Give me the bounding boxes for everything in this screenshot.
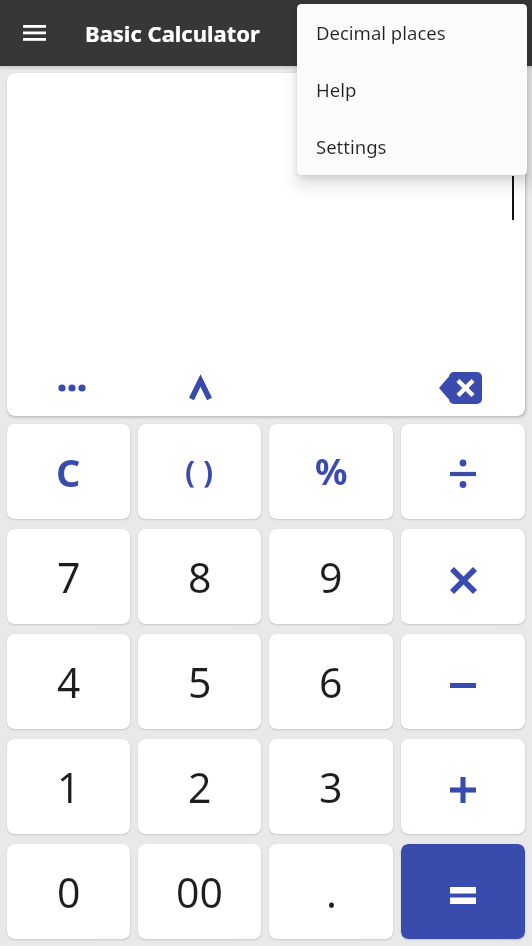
staticText: 8 xyxy=(188,549,212,605)
staticText: C xyxy=(56,446,81,498)
button[interactable]: 2 xyxy=(138,739,261,834)
staticText: 7 xyxy=(57,549,81,605)
button[interactable]: . xyxy=(269,844,393,939)
staticText: 9 xyxy=(319,549,343,605)
button[interactable]: Settings xyxy=(297,118,527,175)
staticText: 1 xyxy=(57,759,81,815)
button[interactable]: 6 xyxy=(269,634,393,729)
button[interactable]: 3 xyxy=(269,739,393,834)
staticText: 5 xyxy=(188,654,212,710)
staticText: ( ) xyxy=(185,451,214,492)
staticText: 4 xyxy=(57,654,81,710)
button[interactable] xyxy=(401,529,525,624)
button[interactable] xyxy=(7,367,136,403)
staticText: Decimal places xyxy=(316,20,446,45)
button[interactable] xyxy=(401,634,525,729)
staticText: Basic Calculator xyxy=(85,18,260,48)
button[interactable]: C xyxy=(7,424,130,519)
button[interactable]: 4 xyxy=(7,634,130,729)
button[interactable] xyxy=(401,844,525,939)
button[interactable]: 5 xyxy=(138,634,261,729)
button[interactable]: ( ) xyxy=(138,424,261,519)
button[interactable] xyxy=(136,367,265,403)
staticText: 2 xyxy=(188,759,212,815)
button[interactable]: 1 xyxy=(7,739,130,834)
button[interactable]: 9 xyxy=(269,529,393,624)
button[interactable]: Help xyxy=(297,61,527,118)
staticText: % xyxy=(315,447,348,496)
button[interactable]: 0 xyxy=(7,844,130,939)
staticText: Settings xyxy=(316,134,387,159)
staticText: 0 xyxy=(57,864,81,920)
button[interactable]: Decimal places xyxy=(297,4,527,61)
button[interactable] xyxy=(401,739,525,834)
staticText: 6 xyxy=(319,654,343,710)
button[interactable]: 00 xyxy=(138,844,261,939)
button[interactable] xyxy=(395,367,525,403)
staticText: 00 xyxy=(176,864,223,920)
button[interactable]: 7 xyxy=(7,529,130,624)
button[interactable]: 8 xyxy=(138,529,261,624)
staticText: 3 xyxy=(319,759,343,815)
button[interactable] xyxy=(14,13,54,53)
staticText: . xyxy=(326,864,337,920)
staticText: Help xyxy=(316,77,357,102)
button[interactable]: % xyxy=(269,424,393,519)
button[interactable] xyxy=(401,424,525,519)
